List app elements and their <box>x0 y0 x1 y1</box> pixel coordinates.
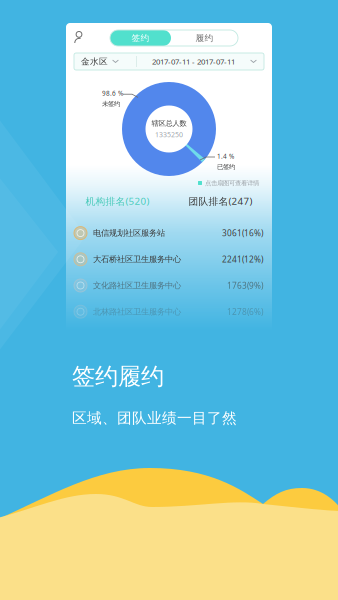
staticText: 金水区 <box>81 56 108 67</box>
staticText: 大石桥社区卫生服务中心 <box>93 254 181 264</box>
button[interactable]: 用户 <box>66 29 96 48</box>
staticText: 未签约 <box>102 100 120 108</box>
button[interactable]: 电信规划社区服务站 <box>66 220 272 246</box>
staticText: 电信规划社区服务站 <box>93 228 165 238</box>
button[interactable]: 机构排名(520) <box>66 190 169 212</box>
button[interactable]: 签约 <box>110 30 171 46</box>
staticText: 已签约 <box>217 163 235 171</box>
staticText: 2241(12%) <box>222 254 263 265</box>
button[interactable]: 履约 <box>171 30 238 46</box>
staticText: 1.4 % <box>217 152 234 161</box>
staticText: 北林路社区卫生服务中心 <box>93 306 181 317</box>
staticText: 2017-07-11 - 2017-07-11 <box>152 56 235 67</box>
button[interactable]: 金水区 <box>74 53 136 70</box>
staticText: 98.6 % <box>102 89 123 98</box>
button[interactable]: 2017-07-11 - 2017-07-11 <box>137 53 264 70</box>
staticText: 辖区总人数 <box>151 119 186 128</box>
staticText: 3061(16%) <box>222 227 263 239</box>
button[interactable]: 文化路社区卫生服务中心 <box>66 272 272 299</box>
staticText: 1335250 <box>155 130 183 139</box>
staticText: 履约 <box>195 32 213 43</box>
staticText: 机构排名(520) <box>85 194 149 208</box>
button[interactable]: 团队排名(247) <box>169 190 272 212</box>
staticText: 点击扇图可查看详情 <box>205 179 259 187</box>
staticText: 文化路社区卫生服务中心 <box>93 280 181 291</box>
staticText: 1278(6%) <box>227 306 263 317</box>
staticText: 团队排名(247) <box>188 194 252 208</box>
button[interactable]: 大石桥社区卫生服务中心 <box>66 246 272 272</box>
staticText: 区域、团队业绩一目了然 <box>72 409 237 427</box>
staticText: 签约履约 <box>72 362 164 391</box>
button[interactable]: 北林路社区卫生服务中心 <box>66 299 272 325</box>
staticText: 签约 <box>131 32 149 43</box>
staticText: 1763(9%) <box>227 280 263 291</box>
